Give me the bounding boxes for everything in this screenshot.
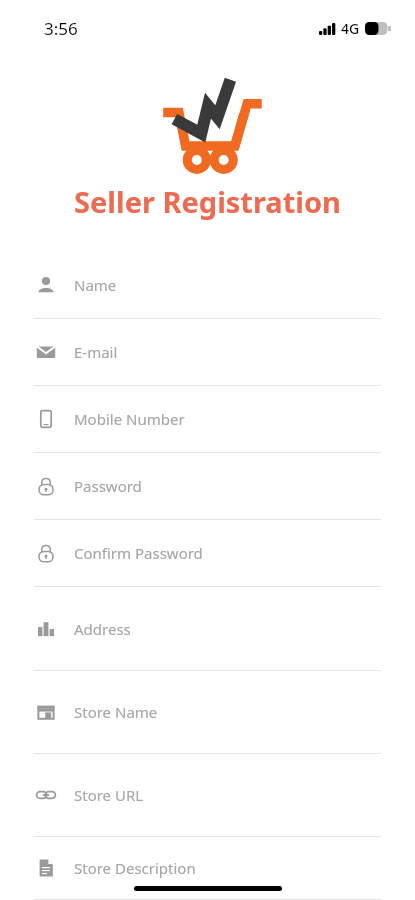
other: Password [36, 543, 56, 563]
button[interactable]: Mobile Number [0, 386, 415, 453]
other: Mobile Number [36, 409, 56, 429]
button[interactable]: Password [0, 453, 415, 520]
staticText: E-mail [74, 342, 118, 362]
other: Password [36, 476, 56, 496]
button[interactable]: E-mail [0, 319, 415, 386]
other: Store URL [36, 785, 56, 805]
other: Address [36, 619, 56, 639]
button[interactable]: Password [0, 520, 415, 587]
staticText: Store URL [74, 785, 144, 805]
button[interactable]: Store URL [0, 754, 415, 837]
button[interactable]: Store Name [0, 671, 415, 754]
staticText: Mobile Number [74, 409, 185, 429]
staticText: Password [74, 476, 142, 496]
other: Store Name [36, 702, 56, 722]
staticText: Address [74, 619, 131, 639]
staticText: Name [74, 275, 117, 295]
other: Name [36, 275, 56, 295]
button[interactable]: Address [0, 587, 415, 671]
button[interactable]: Name [0, 252, 415, 319]
staticText: 4G [341, 19, 360, 38]
other: Store Description [36, 858, 56, 878]
other: E-mail [36, 342, 56, 362]
staticText: 3:56 [44, 17, 78, 40]
staticText: Store Name [74, 702, 158, 722]
staticText: Confirm Password [74, 543, 203, 563]
staticText: Store Description [74, 858, 196, 878]
button[interactable]: Store Description [0, 837, 415, 900]
staticText: Seller Registration [0, 182, 415, 221]
